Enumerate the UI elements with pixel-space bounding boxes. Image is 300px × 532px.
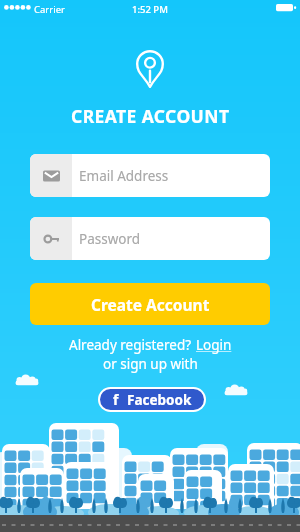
staticText: Already registered? [69, 336, 192, 354]
staticText: Email Address [79, 167, 169, 185]
staticText: f [113, 390, 119, 409]
other: Location pin [136, 50, 164, 88]
staticText: or sign up with [103, 355, 198, 373]
staticText: Carrier [34, 3, 65, 16]
staticText: Login [196, 336, 232, 354]
button[interactable]: Create Account [30, 283, 270, 325]
button[interactable]: f [100, 389, 204, 410]
button[interactable]: Password [30, 217, 270, 260]
button[interactable]: Email Address [30, 154, 270, 197]
staticText: Create Account [91, 294, 210, 315]
staticText: Facebook [127, 391, 192, 409]
staticText: CREATE ACCOUNT [71, 104, 230, 128]
staticText: Password [79, 230, 141, 248]
staticText: 1:52 PM [132, 3, 168, 16]
button[interactable]: Login [196, 336, 232, 354]
